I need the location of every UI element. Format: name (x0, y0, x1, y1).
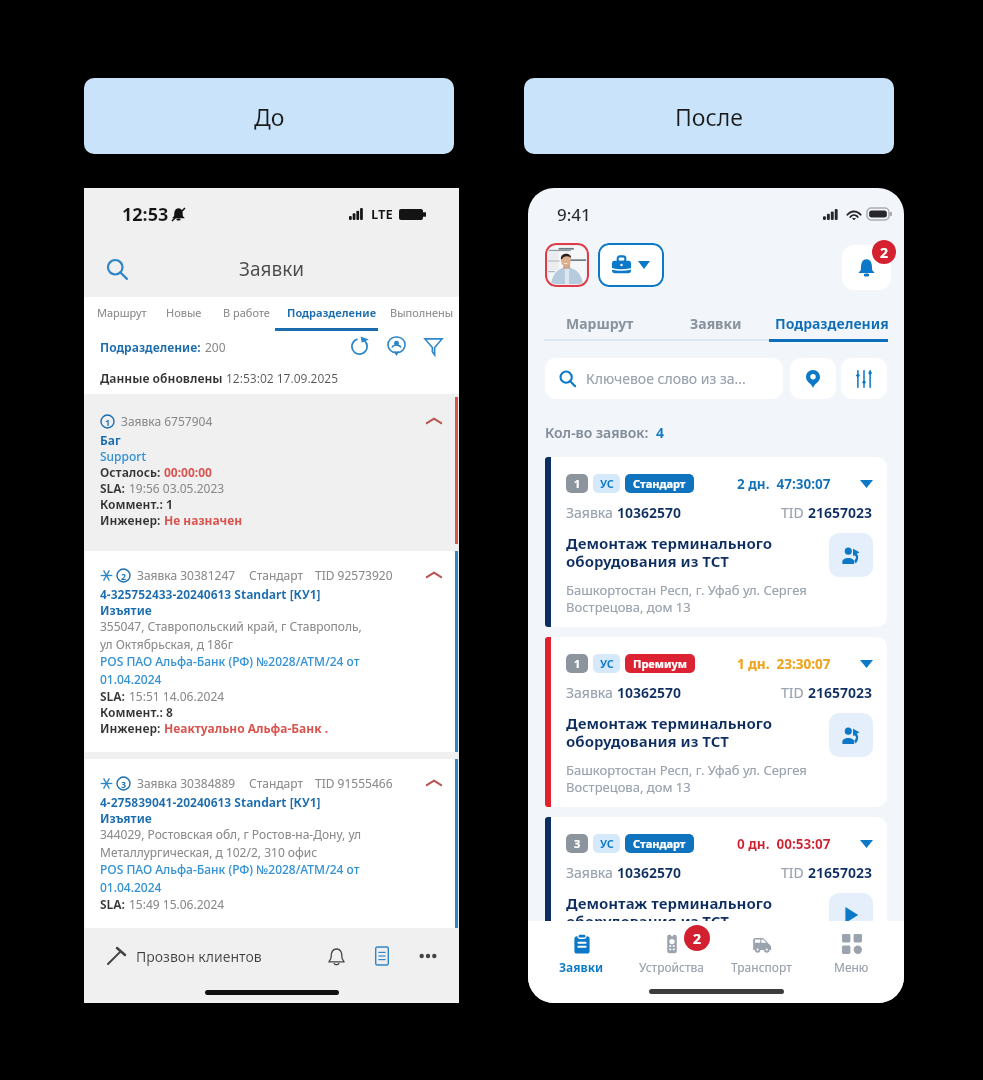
button[interactable] (545, 817, 887, 987)
staticText: 2 (693, 929, 702, 948)
button[interactable]: Маршрут (88, 297, 155, 328)
button[interactable]: Развернуть (860, 840, 873, 848)
staticText: TID (781, 503, 808, 522)
button[interactable]: Устройства (626, 921, 716, 979)
staticText: Не назначен (164, 512, 243, 528)
button[interactable]: Транспорт (716, 921, 806, 979)
staticText: Подразделение: (100, 339, 201, 355)
staticText: TID 91555466 (315, 775, 393, 791)
button[interactable]: Карта (790, 358, 836, 399)
staticText: 3 (574, 836, 581, 851)
staticText: Демонтаж терминального оборудования из Т… (566, 533, 773, 572)
staticText: Стандарт (633, 476, 686, 491)
staticText: Коммент.: (100, 496, 166, 512)
staticText: Новые (166, 305, 202, 320)
button[interactable]: Маршрут (542, 307, 658, 339)
staticText: В работе (223, 305, 270, 320)
button[interactable]: 1 (85, 397, 458, 544)
button[interactable] (545, 637, 887, 807)
button[interactable]: Обновить (350, 337, 369, 356)
staticText: Подразделения (775, 314, 889, 333)
staticText: Баг (100, 432, 121, 448)
staticText: Транспорт (731, 959, 792, 975)
staticText: Ключевое слово из за... (586, 369, 746, 388)
button[interactable]: 3 (85, 759, 458, 928)
staticText: 1 (574, 476, 581, 491)
staticText: 00:00:00 (164, 464, 212, 480)
staticText: POS ПАО Альфа-Банк (РФ) №2028/ATM/24 от … (100, 861, 360, 896)
button[interactable] (545, 457, 887, 627)
staticText: Маршрут (566, 314, 634, 333)
button[interactable]: Профиль (545, 243, 589, 287)
button[interactable]: 2 (85, 551, 458, 752)
staticText: 10362570 (617, 683, 682, 702)
button[interactable]: Уведомления (328, 948, 345, 965)
staticText: Стандарт (249, 567, 304, 583)
staticText: Изъятие (100, 810, 152, 826)
staticText: Support (100, 448, 147, 464)
staticText: УС (600, 656, 614, 671)
button[interactable]: Уведомления (842, 245, 891, 290)
button[interactable]: Ключевое слово из за... (545, 358, 783, 399)
staticText: Заявки (239, 256, 305, 282)
staticText: Заявки (559, 959, 604, 975)
button[interactable]: Ещё (419, 947, 437, 965)
staticText: Заявки (690, 314, 742, 333)
button[interactable]: Выбрать организацию (598, 243, 664, 287)
staticText: 4 (656, 423, 665, 442)
button[interactable]: Меню (806, 921, 896, 979)
button[interactable]: Начать (829, 893, 873, 937)
staticText: 200 (205, 339, 226, 355)
staticText: Заявка 6757904 (121, 413, 213, 429)
staticText: 2 дн. 47:30:07 (737, 475, 831, 493)
staticText: TID (781, 863, 808, 882)
staticText: Устройства (639, 959, 704, 975)
staticText: SLA: (100, 896, 129, 912)
staticText: Меню (834, 959, 869, 975)
staticText: Премиум (633, 656, 687, 671)
button[interactable]: Новые (155, 297, 213, 328)
button[interactable]: Развернуть (860, 480, 873, 488)
button[interactable]: Поиск (106, 258, 128, 280)
staticText: 1 (105, 416, 111, 428)
button[interactable]: В работе (213, 297, 279, 328)
button[interactable]: Заявки (658, 307, 774, 339)
button[interactable]: До (84, 78, 454, 154)
staticText: 1 дн. 23:30:07 (737, 655, 831, 673)
staticText: 15:51 14.06.2024 (129, 688, 225, 704)
staticText: 21657023 (808, 683, 873, 702)
button[interactable]: Подразделения (774, 307, 890, 339)
button[interactable]: Развернуть (860, 660, 873, 668)
staticText: 12:53:02 17.09.2025 (226, 370, 339, 386)
staticText: До (254, 101, 285, 132)
staticText: 355047, Ставропольский край, г Ставропол… (100, 618, 362, 653)
staticText: 1 (166, 496, 173, 512)
button[interactable]: Прозвон клиентов (106, 946, 268, 966)
staticText: 3 (121, 778, 127, 790)
button[interactable]: Выполнены (384, 297, 459, 328)
staticText: Маршрут (97, 305, 147, 320)
staticText: УС (600, 836, 614, 851)
staticText: 19:56 03.05.2023 (129, 480, 225, 496)
staticText: УС (600, 476, 614, 491)
staticText: 344029, Ростовская обл, г Ростов-на-Дону… (100, 826, 361, 861)
staticText: Прозвон клиентов (136, 947, 262, 966)
staticText: Заявка 30384889 (137, 775, 236, 791)
button[interactable]: Документы (373, 947, 391, 965)
button[interactable]: Фильтры (841, 358, 887, 399)
button[interactable]: Подразделение (279, 297, 384, 328)
staticText: 21657023 (808, 503, 873, 522)
staticText: 10362570 (617, 863, 682, 882)
button[interactable]: Фильтр (424, 337, 443, 356)
button[interactable]: Назначить (829, 713, 873, 757)
staticText: 9:41 (557, 203, 591, 226)
button[interactable]: Назначить (829, 533, 873, 577)
button[interactable]: Карта (387, 337, 406, 356)
staticText: Заявка (566, 863, 617, 882)
button[interactable]: Заявки (536, 921, 626, 979)
staticText: SLA: (100, 688, 129, 704)
staticText: Стандарт (249, 775, 304, 791)
staticText: Данные обновлены (100, 370, 226, 386)
staticText: 15:49 15.06.2024 (129, 896, 225, 912)
button[interactable]: После (524, 78, 894, 154)
